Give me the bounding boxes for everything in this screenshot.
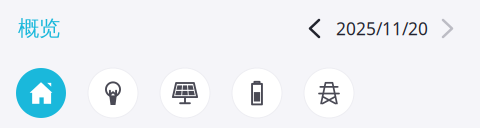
button[interactable]: Solar [160,68,210,118]
staticText: 2025/11/20 [336,17,428,40]
button[interactable]: Grid [304,68,354,118]
button[interactable]: Lighting [88,68,138,118]
button[interactable]: Overview [16,68,66,118]
button[interactable]: Next day [428,14,460,43]
staticText: 概览 [18,15,60,42]
button[interactable]: Previous day [302,14,336,43]
button[interactable]: Battery [232,68,282,118]
